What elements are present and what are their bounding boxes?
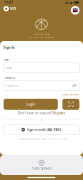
staticText: Login bbox=[26, 102, 35, 106]
staticText: OR bbox=[40, 118, 43, 121]
button[interactable]: Login bbox=[4, 99, 58, 110]
staticText: Sign In bbox=[4, 45, 15, 50]
staticText: Email bbox=[6, 66, 12, 69]
button[interactable]: Forgot Password? bbox=[62, 93, 79, 96]
staticText: Don't have an account? bbox=[18, 111, 53, 115]
button[interactable]: Sign in with Face ID bbox=[62, 99, 79, 110]
staticText: Password bbox=[4, 76, 16, 79]
staticText: MOI bbox=[10, 7, 16, 11]
staticText: وزارة الداخلية bbox=[34, 32, 49, 35]
staticText: Password bbox=[6, 84, 18, 87]
button[interactable]: Register bbox=[53, 111, 65, 115]
staticText: Forgot Password? bbox=[62, 93, 79, 96]
staticText: MINISTRY OF INTERIOR bbox=[29, 36, 54, 38]
staticText: Register bbox=[53, 111, 65, 115]
staticText: Sign in with UAE PASS bbox=[27, 127, 62, 132]
button[interactable]: Ministry of Interior bbox=[3, 6, 16, 11]
staticText: Public Services bbox=[31, 167, 51, 170]
button[interactable]: Public Services bbox=[31, 160, 51, 170]
staticText: 11:07 bbox=[4, 0, 13, 5]
button[interactable]: Switch language bbox=[71, 6, 79, 15]
button[interactable]: Show password bbox=[72, 83, 77, 88]
staticText: A single trusted digital identity for al… bbox=[16, 137, 66, 140]
button[interactable]: Sign in with UAE PASS bbox=[4, 125, 79, 135]
staticText: Email bbox=[4, 58, 10, 62]
